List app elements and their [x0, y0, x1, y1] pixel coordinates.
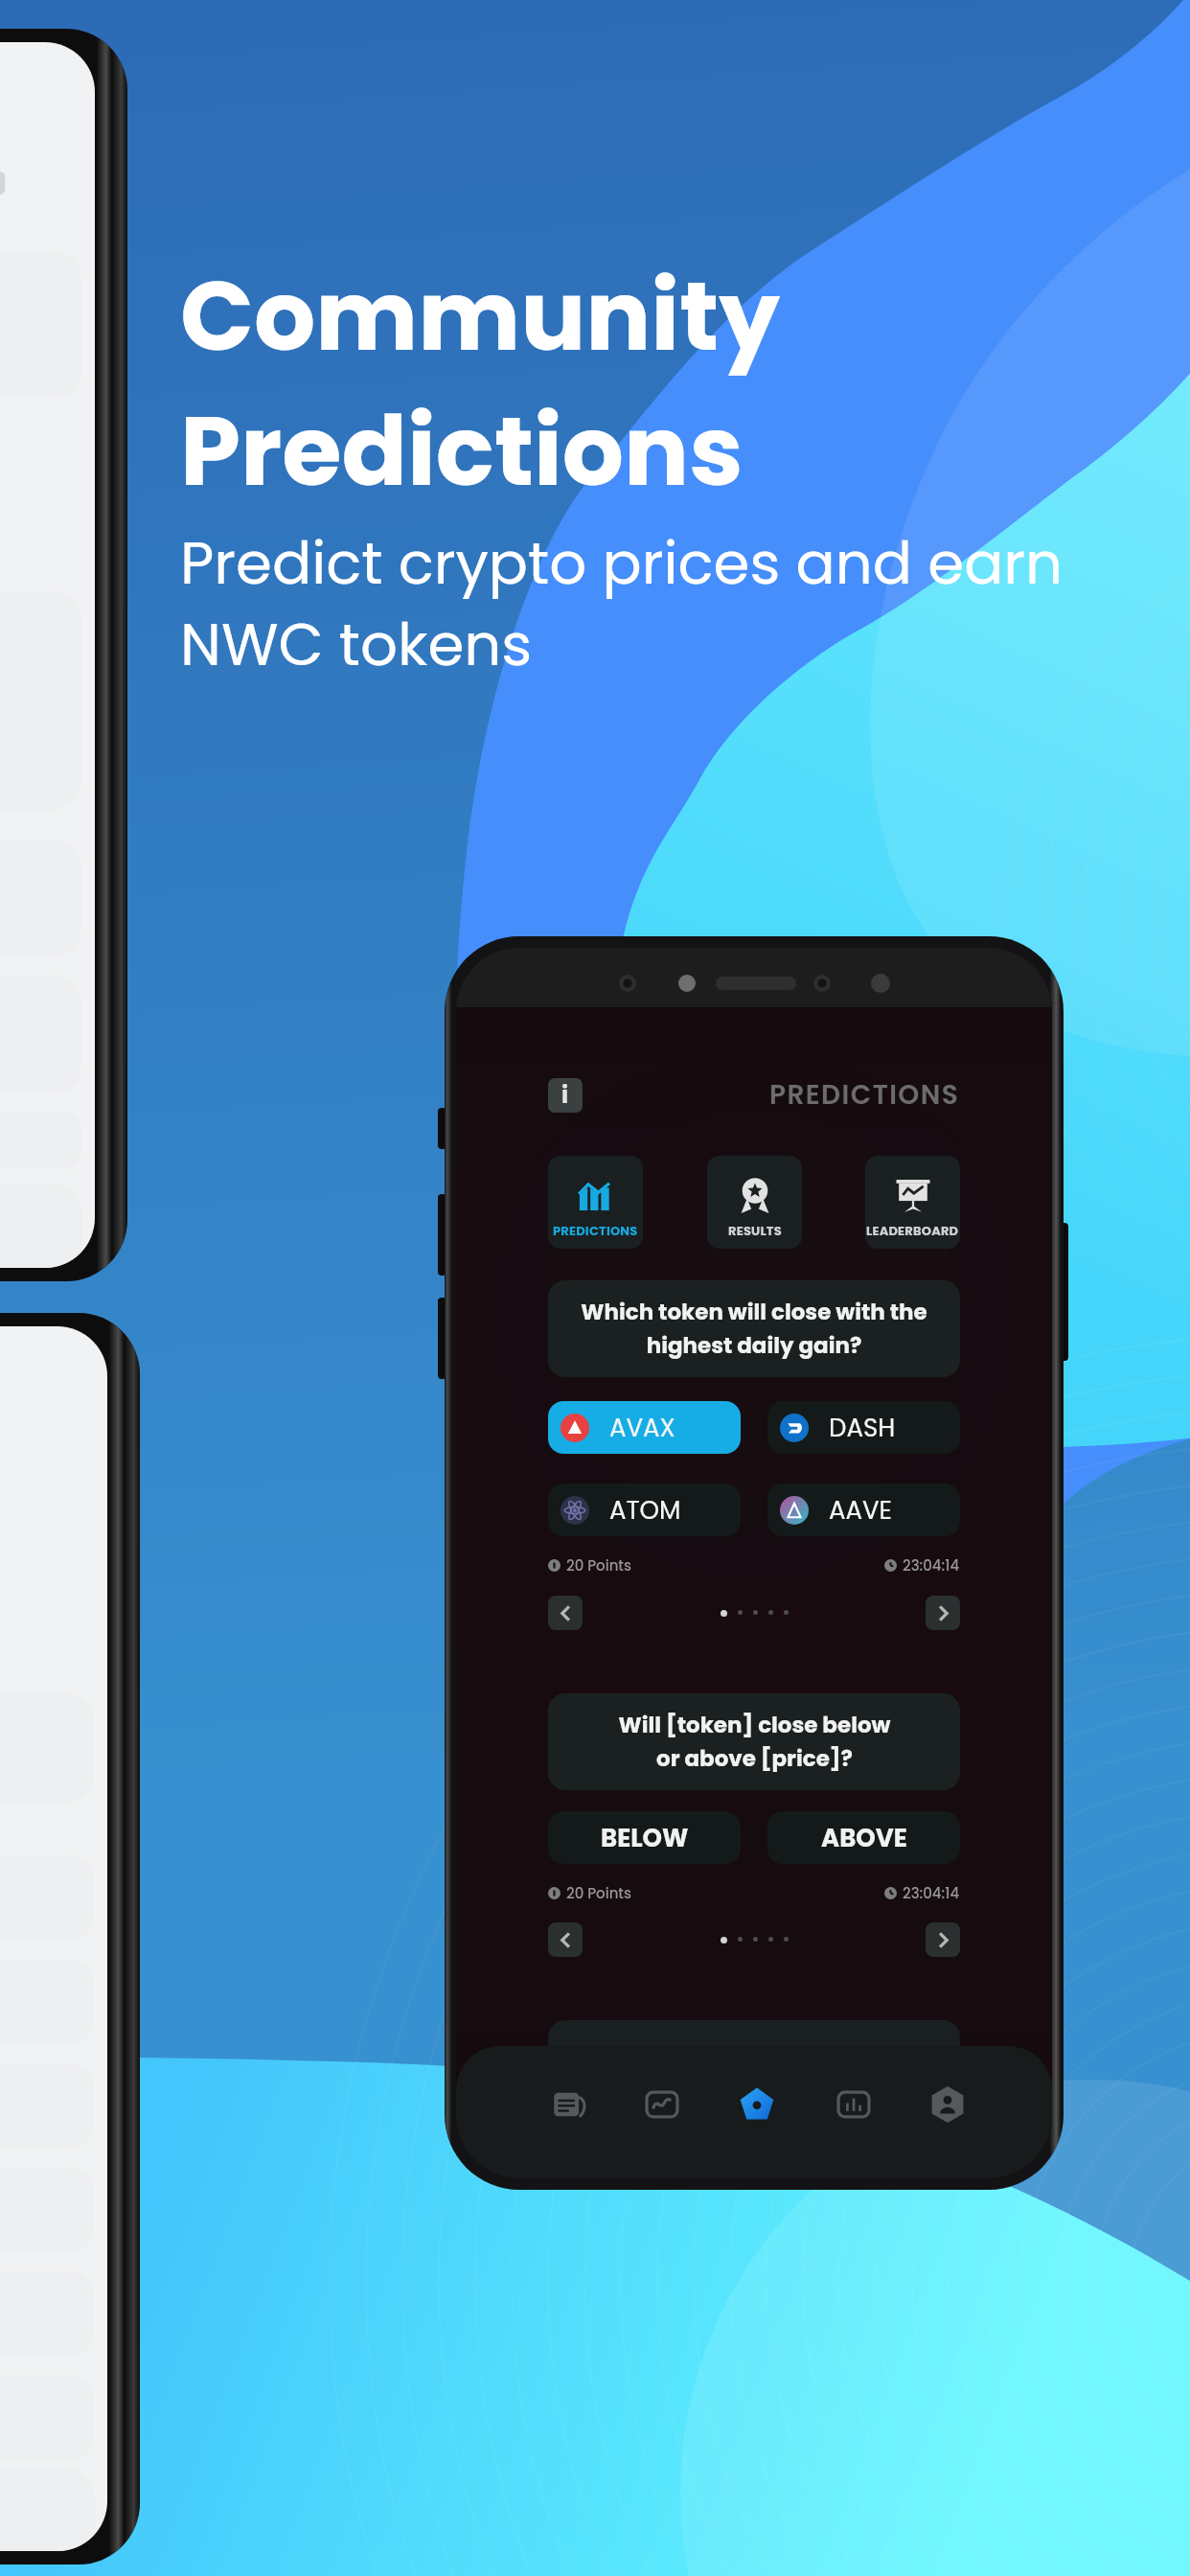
staticText: Which token will close with the highest …: [581, 1297, 927, 1361]
button[interactable]: ABOVE: [767, 1811, 960, 1864]
staticText: NWC tokens: [180, 604, 533, 685]
button[interactable]: Info: [548, 1078, 583, 1113]
staticText: AVAX: [609, 1411, 675, 1445]
staticText: 23:04:14: [903, 1555, 960, 1575]
button[interactable]: Next: [926, 1922, 960, 1957]
button[interactable]: Profile: [918, 2075, 977, 2134]
staticText: 20 Points: [566, 1555, 631, 1575]
staticText: RESULTS: [728, 1222, 782, 1239]
staticText: Predictions: [180, 383, 744, 518]
staticText: Predict crypto prices and earn: [180, 522, 1064, 604]
staticText: 23:04:14: [903, 1883, 960, 1903]
button[interactable]: Next: [926, 1596, 960, 1630]
button[interactable]: ATOM: [548, 1483, 741, 1536]
staticText: ATOM: [609, 1493, 681, 1528]
button[interactable]: Previous: [548, 1922, 583, 1957]
staticText: DASH: [829, 1411, 896, 1445]
staticText: PREDICTIONS: [553, 1222, 638, 1239]
button[interactable]: LEADERBOARD: [865, 1156, 960, 1249]
staticText: i: [561, 1079, 569, 1112]
staticText: Community: [180, 248, 780, 383]
button[interactable]: Markets: [632, 2075, 692, 2134]
button[interactable]: RESULTS: [707, 1156, 802, 1249]
button[interactable]: AVAX: [548, 1401, 741, 1454]
staticText: PREDICTIONS: [769, 1076, 960, 1114]
button[interactable]: DASH: [767, 1401, 960, 1454]
staticText: AAVE: [829, 1493, 892, 1528]
button[interactable]: Predictions: [727, 2075, 787, 2134]
button[interactable]: Charts: [824, 2075, 883, 2134]
button[interactable]: News: [540, 2075, 600, 2134]
button[interactable]: Previous: [548, 1596, 583, 1630]
button[interactable]: BELOW: [548, 1811, 741, 1864]
staticText: ABOVE: [821, 1821, 907, 1855]
staticText: Will [token] close below or above [price…: [618, 1710, 891, 1774]
staticText: 20 Points: [566, 1883, 631, 1903]
staticText: LEADERBOARD: [866, 1222, 959, 1239]
staticText: BELOW: [601, 1821, 689, 1855]
button[interactable]: PREDICTIONS: [548, 1156, 643, 1249]
button[interactable]: AAVE: [767, 1483, 960, 1536]
